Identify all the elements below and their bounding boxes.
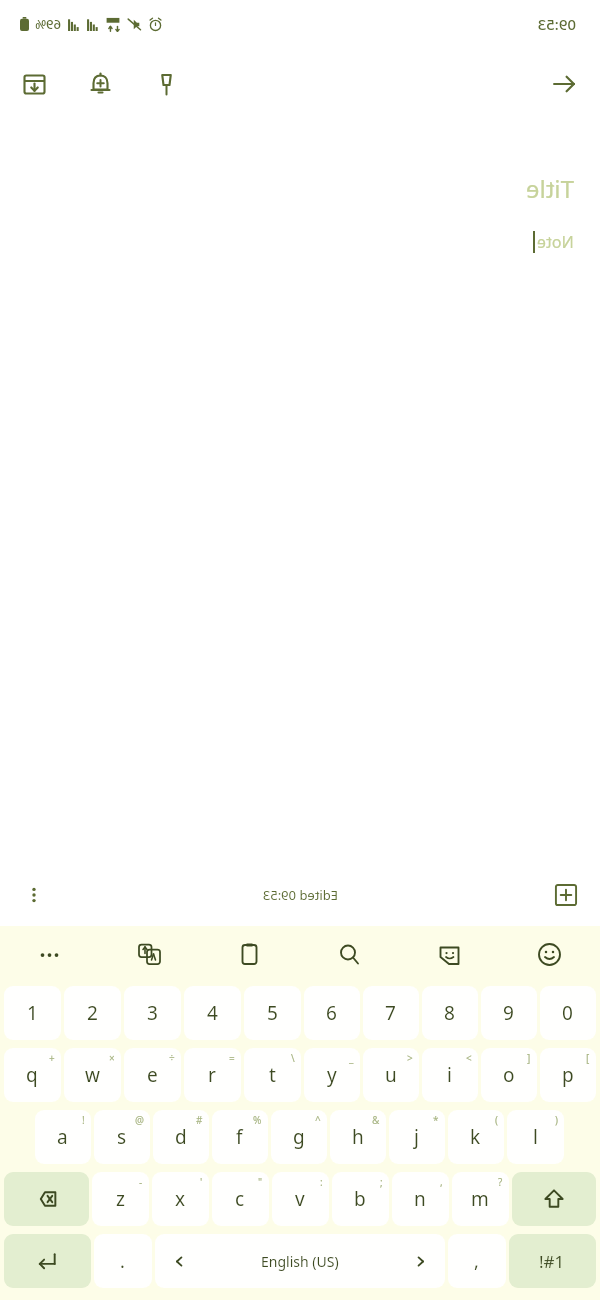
- button[interactable]: Clipboard: [200, 926, 300, 982]
- staticText: !: [82, 1113, 85, 1127]
- staticText: ^: [315, 1113, 321, 1127]
- staticText: s: [117, 1124, 127, 1150]
- button[interactable]: %: [212, 1110, 268, 1164]
- staticText: @: [135, 1113, 144, 1127]
- button[interactable]: ÷: [124, 1048, 181, 1102]
- button[interactable]: !: [35, 1110, 91, 1164]
- button[interactable]: 4: [184, 986, 241, 1040]
- staticText: h: [352, 1124, 364, 1150]
- button[interactable]: Add reminder: [78, 62, 122, 106]
- button[interactable]: Back: [540, 60, 588, 108]
- button[interactable]: Shift: [512, 1172, 596, 1226]
- staticText: :: [320, 1175, 323, 1189]
- button[interactable]: Enter: [4, 1234, 91, 1288]
- button[interactable]: 2: [64, 986, 121, 1040]
- staticText: n: [414, 1186, 426, 1212]
- button[interactable]: =: [184, 1048, 241, 1102]
- staticText: t: [269, 1062, 276, 1088]
- button[interactable]: ×: [64, 1048, 121, 1102]
- button[interactable]: Symbols: [509, 1234, 596, 1288]
- staticText: %: [253, 1113, 262, 1127]
- button[interactable]: ': [152, 1172, 209, 1226]
- staticText: y: [327, 1062, 337, 1088]
- staticText: ×: [109, 1051, 115, 1065]
- staticText: ": [258, 1175, 263, 1189]
- staticText: Edited 09:53: [262, 886, 338, 904]
- staticText: m: [471, 1186, 489, 1212]
- button[interactable]: Emoji: [500, 926, 600, 982]
- button[interactable]: Stickers: [400, 926, 500, 982]
- staticText: 2: [87, 1000, 98, 1026]
- button[interactable]: <: [422, 1048, 478, 1102]
- button[interactable]: 7: [363, 986, 419, 1040]
- staticText: Note: [537, 231, 574, 253]
- staticText: ÷: [169, 1051, 175, 1065]
- button[interactable]: Search: [300, 926, 400, 982]
- staticText: ,: [474, 1249, 479, 1274]
- staticText: i: [447, 1062, 452, 1088]
- button[interactable]: (: [448, 1110, 504, 1164]
- button[interactable]: -: [92, 1172, 149, 1226]
- button[interactable]: >: [363, 1048, 419, 1102]
- button[interactable]: Translate: [100, 926, 200, 982]
- button[interactable]: .: [94, 1234, 152, 1288]
- button[interactable]: More: [0, 926, 100, 982]
- staticText: +: [49, 1051, 55, 1065]
- staticText: 09:53: [537, 14, 576, 34]
- staticText: k: [470, 1124, 481, 1150]
- button[interactable]: 6: [304, 986, 360, 1040]
- staticText: 7: [385, 1000, 396, 1026]
- button[interactable]: ]: [481, 1048, 537, 1102]
- staticText: !#1: [539, 1250, 565, 1273]
- button[interactable]: \: [244, 1048, 301, 1102]
- button[interactable]: ^: [271, 1110, 327, 1164]
- button[interactable]: More options: [12, 873, 56, 917]
- staticText: .: [120, 1249, 125, 1274]
- staticText: u: [385, 1062, 397, 1088]
- button[interactable]: _: [304, 1048, 360, 1102]
- button[interactable]: ,: [392, 1172, 449, 1226]
- staticText: z: [116, 1186, 125, 1212]
- button[interactable]: Add content: [544, 873, 588, 917]
- button[interactable]: Backspace: [4, 1172, 89, 1226]
- button[interactable]: ;: [332, 1172, 389, 1226]
- staticText: <: [466, 1051, 472, 1065]
- staticText: v: [295, 1186, 305, 1212]
- button[interactable]: Archive note: [12, 62, 56, 106]
- staticText: =: [229, 1051, 235, 1065]
- staticText: ,: [440, 1175, 443, 1189]
- button[interactable]: 0: [540, 986, 596, 1040]
- button[interactable]: 3: [124, 986, 181, 1040]
- button[interactable]: 1: [4, 986, 61, 1040]
- button[interactable]: ?: [452, 1172, 509, 1226]
- button[interactable]: :: [272, 1172, 329, 1226]
- staticText: English (US): [261, 1252, 339, 1271]
- button[interactable]: Space: [155, 1234, 445, 1288]
- button[interactable]: &: [330, 1110, 386, 1164]
- button[interactable]: 8: [422, 986, 478, 1040]
- staticText: [: [586, 1051, 590, 1065]
- staticText: #: [196, 1113, 203, 1127]
- button[interactable]: 5: [244, 986, 301, 1040]
- button[interactable]: @: [94, 1110, 150, 1164]
- button[interactable]: ": [212, 1172, 269, 1226]
- staticText: ;: [380, 1175, 383, 1189]
- button[interactable]: +: [4, 1048, 61, 1102]
- button[interactable]: 9: [481, 986, 537, 1040]
- staticText: Title: [526, 172, 574, 205]
- staticText: _: [349, 1051, 354, 1065]
- staticText: w: [85, 1062, 100, 1088]
- staticText: ': [200, 1175, 203, 1189]
- button[interactable]: ): [507, 1110, 564, 1164]
- button[interactable]: ,: [448, 1234, 506, 1288]
- staticText: *: [433, 1113, 439, 1127]
- staticText: p: [562, 1062, 574, 1088]
- button[interactable]: *: [389, 1110, 445, 1164]
- staticText: 1: [27, 1000, 38, 1026]
- staticText: 0: [562, 1000, 573, 1026]
- button[interactable]: [: [540, 1048, 596, 1102]
- staticText: o: [503, 1062, 515, 1088]
- staticText: l: [533, 1124, 538, 1150]
- button[interactable]: #: [153, 1110, 209, 1164]
- button[interactable]: Pin note: [144, 62, 188, 106]
